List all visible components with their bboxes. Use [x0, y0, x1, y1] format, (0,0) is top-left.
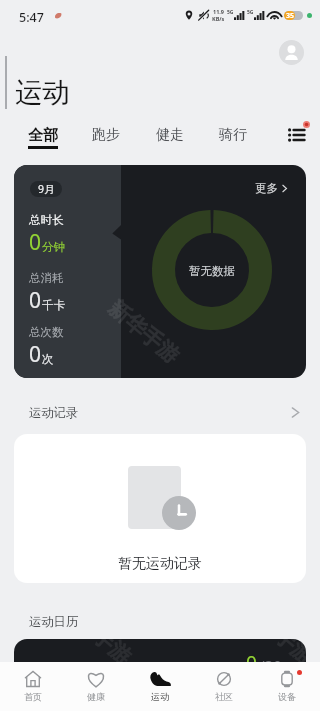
staticText: 运动记录 [29, 405, 79, 420]
button[interactable]: 9月 [14, 165, 306, 378]
staticText: 总次数 [29, 325, 64, 339]
button[interactable]: 0 [14, 639, 306, 711]
staticText: 0 [29, 340, 42, 369]
staticText: 更多 [255, 181, 278, 195]
staticText: KB/s [212, 15, 225, 22]
button[interactable]: List view [283, 122, 309, 148]
button[interactable]: 设备 [259, 662, 315, 711]
staticText: 运动日历 [29, 614, 79, 629]
staticText: 千卡 [42, 298, 65, 312]
staticText: 社区 [215, 691, 233, 702]
staticText: 新华手游 [55, 639, 137, 670]
button[interactable]: 更多 [255, 181, 289, 195]
button[interactable]: 运动记录 [0, 402, 320, 422]
staticText: 5:47 [19, 9, 44, 26]
staticText: 运动 [151, 691, 169, 702]
staticText: 35 [286, 11, 295, 20]
button[interactable]: 暂无运动记录 [14, 434, 306, 583]
button[interactable]: 运动 [132, 662, 188, 711]
staticText: 11.9 [213, 8, 224, 15]
staticText: 跑步 [92, 126, 120, 144]
staticText: /30 [259, 655, 282, 675]
staticText: 总时长 [29, 213, 64, 227]
staticText: 0 [29, 228, 42, 257]
staticText: 首页 [24, 691, 42, 702]
staticText: 新华手游 [237, 639, 306, 670]
staticText: 0 [246, 650, 257, 676]
button[interactable]: 首页 [5, 662, 61, 711]
staticText: 9月 [38, 182, 55, 196]
staticText: 0 [29, 286, 42, 315]
staticText: 新华手游 [103, 295, 185, 369]
staticText: 健走 [156, 126, 184, 144]
staticText: 分钟 [42, 240, 65, 254]
staticText: 总消耗 [29, 271, 64, 285]
button[interactable]: 跑步 [80, 122, 132, 152]
button[interactable]: 社区 [196, 662, 252, 711]
staticText: 健康 [87, 691, 105, 702]
button[interactable]: 骑行 [207, 122, 259, 152]
staticText: 运动 [15, 76, 70, 111]
staticText: 暂无数据 [189, 264, 235, 278]
button[interactable]: 健康 [68, 662, 124, 711]
staticText: 暂无运动记录 [118, 555, 202, 573]
button[interactable]: 全部 [17, 122, 69, 152]
button[interactable]: Profile [279, 40, 304, 65]
staticText: 次 [42, 352, 54, 366]
staticText: 全部 [28, 126, 58, 145]
button[interactable]: 健走 [144, 122, 196, 152]
staticText: 5G [227, 9, 234, 16]
staticText: 骑行 [219, 126, 247, 144]
staticText: 设备 [278, 691, 296, 702]
staticText: 5G [247, 9, 254, 16]
